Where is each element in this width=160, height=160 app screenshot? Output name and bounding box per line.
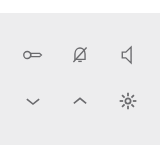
button[interactable]: Lock (18, 40, 48, 70)
button[interactable]: Mute notifications (65, 40, 95, 70)
button[interactable]: Volume (113, 40, 143, 70)
button[interactable]: Scroll down (18, 86, 48, 116)
button[interactable]: Brightness (113, 86, 143, 116)
button[interactable]: Scroll up (65, 86, 95, 116)
